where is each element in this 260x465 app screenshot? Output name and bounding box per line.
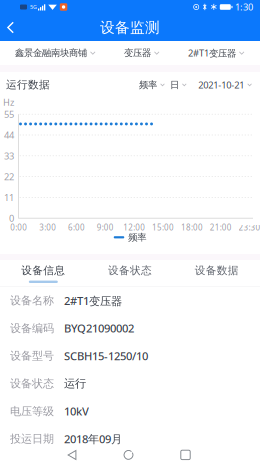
staticText: 6:00 [68, 222, 85, 233]
staticText: 1:30 [235, 1, 253, 13]
button[interactable]: 鑫景金融南块商铺 [15, 41, 95, 65]
staticText: 投运日期 [10, 432, 54, 446]
staticText: 运行数据 [6, 78, 50, 91]
button[interactable]: 设备数据 [173, 260, 260, 286]
staticText: 10kV [64, 404, 89, 419]
staticText: 设备状态 [108, 264, 152, 277]
staticText: 2#T1变压器 [64, 293, 122, 308]
button[interactable]: 日 [170, 75, 186, 95]
staticText: 55 [4, 108, 14, 120]
button[interactable]: 变压器 [124, 41, 159, 65]
staticText: 11 [4, 191, 14, 204]
staticText: 设备状态 [10, 377, 54, 390]
staticText: 频率 [128, 232, 146, 243]
staticText: 12:00 [123, 222, 145, 233]
staticText: 运行 [64, 376, 86, 391]
button[interactable]: 2021-10-21 [198, 75, 251, 95]
staticText: 2#T1变压器 [188, 47, 236, 59]
staticText: 0 [9, 212, 14, 224]
staticText: BYQ21090002 [64, 321, 134, 336]
staticText: 设备监测 [100, 18, 160, 36]
staticText: 2021-10-21 [198, 79, 244, 91]
button[interactable]: Back [0, 16, 24, 39]
staticText: 鑫景金融南块商铺 [15, 47, 87, 59]
staticText: 电压等级 [10, 404, 54, 418]
staticText: 22 [4, 170, 14, 183]
staticText: 33 [4, 150, 14, 162]
staticText: 5G [30, 3, 37, 11]
staticText: 变压器 [124, 47, 151, 59]
staticText: 0:00 [10, 222, 27, 233]
staticText: 设备信息 [21, 264, 65, 277]
button[interactable]: Back [57, 445, 87, 465]
staticText: 设备编码 [10, 321, 54, 335]
staticText: 频率 [139, 79, 157, 91]
staticText: 18:00 [181, 222, 203, 233]
staticText: 9:00 [97, 222, 114, 233]
button[interactable]: Recent apps [171, 445, 200, 465]
staticText: 设备数据 [195, 264, 239, 277]
button[interactable]: 设备状态 [87, 260, 173, 286]
button[interactable]: Home [113, 445, 143, 465]
staticText: SCBH15-1250/10 [64, 348, 148, 364]
button[interactable]: 频率 [139, 75, 164, 95]
staticText: 2018年09月 [64, 431, 122, 446]
staticText: 设备名称 [10, 294, 54, 308]
staticText: 21:00 [210, 222, 232, 233]
staticText: 15:00 [152, 222, 174, 233]
staticText: 44 [4, 129, 14, 141]
staticText: Hz [3, 96, 14, 108]
staticText: 日 [170, 79, 179, 91]
staticText: 23:30 [239, 222, 260, 233]
button[interactable]: 设备信息 [0, 260, 87, 286]
staticText: 3:00 [39, 222, 56, 233]
staticText: 设备型号 [10, 349, 54, 363]
button[interactable]: 2#T1变压器 [188, 41, 244, 65]
